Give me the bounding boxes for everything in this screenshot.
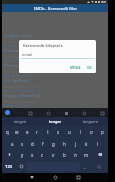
staticText: OK bbox=[87, 66, 92, 70]
button[interactable]: r bbox=[32, 126, 42, 138]
button[interactable]: Keyboard tool 2 bbox=[46, 111, 50, 115]
button[interactable]: p bbox=[97, 126, 108, 138]
button[interactable]: IMDb - Keresendő film bbox=[2, 4, 108, 12]
button[interactable]: o bbox=[86, 126, 97, 138]
button[interactable]: d bbox=[27, 138, 37, 149]
button[interactable]: . bbox=[80, 160, 90, 173]
button[interactable]: Keyboard tool 4 bbox=[82, 111, 86, 115]
button[interactable]: v bbox=[48, 149, 59, 160]
staticText: r bbox=[36, 129, 38, 135]
staticText: tenger bbox=[49, 119, 62, 124]
staticText: 123 bbox=[5, 164, 13, 170]
button[interactable]: a bbox=[7, 138, 17, 149]
button[interactable]: Gangs of New York bbox=[4, 93, 108, 108]
button[interactable]: z bbox=[53, 126, 64, 138]
button[interactable]: Back bbox=[28, 174, 35, 181]
button[interactable]: Keyboard tool 5 bbox=[100, 111, 104, 115]
button[interactable]: Home bbox=[52, 174, 59, 181]
staticText: v bbox=[52, 152, 55, 158]
staticText: a bbox=[11, 141, 14, 147]
button[interactable]: Peter tenger bbox=[4, 63, 108, 78]
button[interactable]: 123 bbox=[2, 160, 16, 173]
button[interactable]: Backspace bbox=[92, 149, 108, 160]
staticText: t bbox=[47, 129, 49, 135]
button[interactable]: u bbox=[64, 126, 75, 138]
button[interactable]: Google bbox=[5, 110, 10, 115]
staticText: p bbox=[101, 129, 104, 135]
button[interactable]: n bbox=[70, 149, 81, 160]
staticText: f bbox=[42, 141, 44, 147]
button[interactable]: i bbox=[75, 126, 86, 138]
button[interactable]: k bbox=[81, 138, 92, 149]
staticText: MÉGSE bbox=[70, 66, 81, 70]
button[interactable]: Shift bbox=[2, 149, 17, 160]
staticText: A tenger filmje bbox=[4, 48, 33, 53]
staticText: A.I.: Artificial bbox=[4, 78, 29, 83]
button[interactable]: Keyboard tool 3 bbox=[64, 111, 68, 115]
staticText: j bbox=[75, 141, 77, 147]
staticText: Peter tenger bbox=[4, 63, 29, 68]
staticText: Tengeri kaland bbox=[4, 54, 27, 58]
staticText: . bbox=[84, 164, 86, 170]
button[interactable]: f bbox=[37, 138, 48, 149]
staticText: h bbox=[63, 141, 66, 147]
button[interactable]: tengerre bbox=[73, 117, 108, 126]
staticText: IMDb - Keresendő film bbox=[34, 6, 77, 11]
staticText: email bbox=[22, 52, 33, 57]
button[interactable]: Keyboard tool 1 bbox=[28, 111, 32, 115]
staticText: tengeri bbox=[14, 119, 27, 124]
button[interactable]: m bbox=[81, 149, 92, 160]
staticText: A tengeri nyúl bbox=[4, 39, 26, 43]
staticText: z bbox=[57, 129, 60, 135]
button[interactable]: s bbox=[17, 138, 27, 149]
staticText: d bbox=[31, 141, 34, 147]
staticText: Martin Scorsese bbox=[4, 73, 32, 78]
staticText: Marton Keleti bbox=[4, 58, 28, 63]
button[interactable]: j bbox=[70, 138, 81, 149]
staticText: Gangs of New York bbox=[4, 93, 42, 98]
staticText: g bbox=[52, 141, 55, 147]
button[interactable]: h bbox=[59, 138, 70, 149]
staticText: w bbox=[15, 129, 19, 135]
button[interactable]: y bbox=[17, 149, 27, 160]
staticText: Martin Scorsese bbox=[4, 103, 32, 108]
staticText: o bbox=[90, 129, 93, 135]
staticText: Keresendő kifejezés bbox=[23, 43, 63, 49]
button[interactable]: OK bbox=[85, 65, 94, 71]
button[interactable]: q bbox=[2, 126, 12, 138]
staticText: k bbox=[85, 141, 88, 147]
button[interactable]: Tengeri nyulak bbox=[4, 33, 108, 48]
button[interactable]: MÉGSE bbox=[68, 65, 83, 71]
staticText: Tengeri nyulak bbox=[4, 33, 33, 38]
button[interactable]: Recents bbox=[75, 174, 82, 181]
button[interactable]: A tenger filmje bbox=[4, 48, 108, 63]
staticText: m bbox=[84, 152, 89, 158]
staticText: e bbox=[26, 129, 29, 135]
button[interactable]: t bbox=[42, 126, 53, 138]
button[interactable]: b bbox=[59, 149, 70, 160]
button[interactable]: g bbox=[48, 138, 59, 149]
button[interactable]: e bbox=[22, 126, 32, 138]
staticText: b bbox=[63, 152, 66, 158]
staticText: tengerre bbox=[83, 119, 98, 124]
button[interactable]: tenger bbox=[38, 117, 73, 126]
button[interactable]: c bbox=[37, 149, 48, 160]
staticText: s bbox=[21, 141, 24, 147]
staticText: Steven Spielberg bbox=[4, 88, 33, 93]
button[interactable]: Emoji bbox=[16, 160, 26, 173]
staticText: i bbox=[80, 129, 82, 135]
button[interactable]: x bbox=[27, 149, 37, 160]
staticText: x bbox=[31, 152, 34, 158]
button[interactable]: A.I.: Artificial bbox=[4, 78, 108, 93]
staticText: l bbox=[97, 141, 99, 147]
button[interactable]: w bbox=[12, 126, 22, 138]
staticText: q bbox=[6, 129, 9, 135]
button[interactable]: Enter bbox=[90, 160, 108, 173]
staticText: c bbox=[41, 152, 44, 158]
staticText: u bbox=[68, 129, 71, 135]
button[interactable]: tengeri bbox=[2, 117, 38, 126]
button[interactable]: l bbox=[92, 138, 103, 149]
